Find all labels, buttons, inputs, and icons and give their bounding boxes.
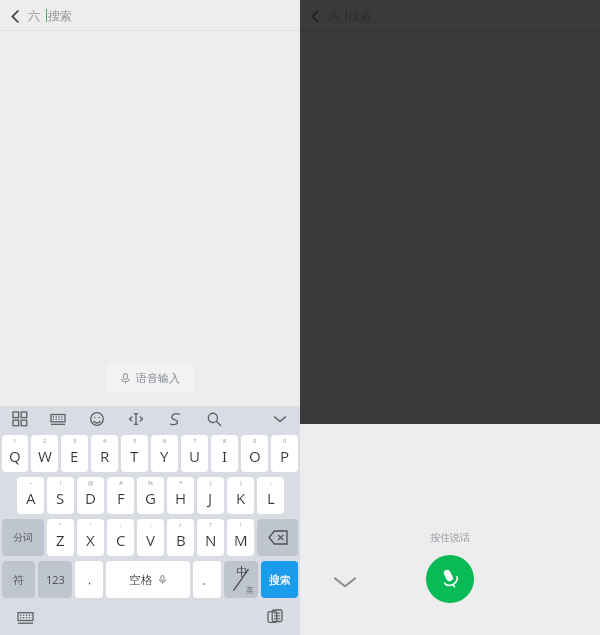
staticText: ( bbox=[210, 479, 212, 487]
button[interactable]: ? bbox=[197, 519, 224, 556]
button[interactable]: Cursor bbox=[125, 408, 147, 430]
staticText: F bbox=[117, 488, 125, 508]
staticText: # bbox=[119, 479, 123, 487]
staticText: ! bbox=[240, 521, 242, 529]
staticText: 搜索 bbox=[348, 8, 372, 23]
staticText: U bbox=[189, 446, 200, 466]
button[interactable]: 语音输入 bbox=[106, 364, 194, 392]
button[interactable]: % bbox=[137, 477, 164, 514]
staticText: C bbox=[116, 530, 126, 550]
button[interactable]: ， bbox=[75, 561, 103, 598]
button[interactable]: 空格 bbox=[106, 561, 190, 598]
staticText: 英 bbox=[246, 585, 254, 595]
button[interactable]: 。 bbox=[193, 561, 221, 598]
button[interactable]: 符 bbox=[2, 561, 35, 598]
staticText: : bbox=[120, 521, 122, 529]
button[interactable]: Hold to talk bbox=[426, 555, 474, 603]
button[interactable]: 5 bbox=[121, 435, 148, 472]
staticText: M bbox=[234, 530, 248, 550]
staticText: Z bbox=[56, 530, 65, 550]
button[interactable]: Search bbox=[203, 408, 225, 430]
button[interactable]: # bbox=[107, 477, 134, 514]
staticText: J bbox=[208, 488, 213, 508]
button[interactable]: Backspace bbox=[257, 519, 298, 556]
staticText: 7 bbox=[193, 437, 197, 445]
button[interactable]: Apps bbox=[9, 408, 31, 430]
button[interactable]: Clipboard bbox=[262, 604, 288, 630]
button[interactable]: ' bbox=[77, 519, 104, 556]
button[interactable]: Back bbox=[300, 1, 330, 31]
staticText: T bbox=[130, 446, 139, 466]
button[interactable]: 3 bbox=[61, 435, 88, 472]
button[interactable]: 9 bbox=[241, 435, 268, 472]
staticText: L bbox=[267, 488, 275, 508]
staticText: 123 bbox=[46, 572, 65, 587]
button[interactable]: 7 bbox=[181, 435, 208, 472]
staticText: 空格 bbox=[129, 572, 153, 587]
button[interactable]: 1 bbox=[2, 435, 28, 472]
staticText: X bbox=[86, 530, 95, 550]
button[interactable]: 123 bbox=[38, 561, 72, 598]
button[interactable]: Hide keyboard bbox=[269, 408, 291, 430]
staticText: P bbox=[280, 446, 290, 466]
button[interactable]: Keyboard layout bbox=[47, 408, 69, 430]
staticText: 4 bbox=[103, 437, 107, 445]
button[interactable]: " bbox=[47, 519, 74, 556]
button[interactable]: 中 bbox=[224, 561, 258, 598]
button[interactable]: 6 bbox=[151, 435, 178, 472]
staticText: V bbox=[146, 530, 156, 550]
staticText: B bbox=[176, 530, 186, 550]
button[interactable]: - bbox=[257, 477, 284, 514]
staticText: ) bbox=[240, 479, 242, 487]
staticText: 搜索 bbox=[48, 8, 72, 23]
button[interactable]: * bbox=[167, 477, 194, 514]
button[interactable]: Emoji bbox=[86, 408, 108, 430]
button[interactable]: Back bbox=[0, 1, 30, 31]
staticText: S bbox=[56, 488, 65, 508]
staticText: ; bbox=[150, 521, 152, 529]
staticText: 。 bbox=[202, 573, 213, 587]
staticText: 分词 bbox=[13, 531, 33, 544]
button[interactable]: ~ bbox=[17, 477, 44, 514]
button[interactable]: 4 bbox=[91, 435, 118, 472]
staticText: 语音输入 bbox=[136, 371, 180, 385]
staticText: 搜索 bbox=[269, 573, 291, 587]
button[interactable]: ) bbox=[227, 477, 254, 514]
button[interactable]: Switch keyboard bbox=[12, 604, 38, 630]
staticText: A bbox=[26, 488, 36, 508]
staticText: 六 bbox=[28, 8, 40, 23]
button[interactable]: ! bbox=[227, 519, 254, 556]
button[interactable]: ; bbox=[137, 519, 164, 556]
staticText: H bbox=[175, 488, 187, 508]
staticText: - bbox=[270, 479, 272, 487]
staticText: D bbox=[85, 488, 96, 508]
staticText: 中 bbox=[236, 564, 248, 579]
staticText: 六 bbox=[328, 8, 340, 23]
staticText: 9 bbox=[253, 437, 257, 445]
staticText: 符 bbox=[13, 573, 24, 587]
button[interactable]: @ bbox=[77, 477, 104, 514]
button[interactable]: ( bbox=[197, 477, 224, 514]
staticText: ! bbox=[60, 479, 62, 487]
staticText: 0 bbox=[283, 437, 287, 445]
button[interactable]: 分词 bbox=[2, 519, 44, 556]
staticText: 按住说话 bbox=[430, 531, 470, 544]
button[interactable]: ! bbox=[47, 477, 74, 514]
staticText: 1 bbox=[13, 437, 17, 445]
button[interactable]: 8 bbox=[211, 435, 238, 472]
staticText: ， bbox=[84, 573, 95, 587]
button[interactable]: Handwriting bbox=[164, 408, 186, 430]
staticText: 8 bbox=[223, 437, 227, 445]
button[interactable]: 搜索 bbox=[261, 561, 298, 598]
staticText: N bbox=[205, 530, 217, 550]
staticText: / bbox=[179, 521, 182, 529]
staticText: Y bbox=[160, 446, 169, 466]
button[interactable]: : bbox=[107, 519, 134, 556]
button[interactable]: Hide voice input bbox=[330, 567, 360, 597]
button[interactable]: 2 bbox=[31, 435, 58, 472]
staticText: I bbox=[222, 446, 228, 466]
staticText: % bbox=[148, 479, 153, 487]
staticText: O bbox=[249, 446, 261, 466]
button[interactable]: / bbox=[167, 519, 194, 556]
button[interactable]: 0 bbox=[271, 435, 298, 472]
